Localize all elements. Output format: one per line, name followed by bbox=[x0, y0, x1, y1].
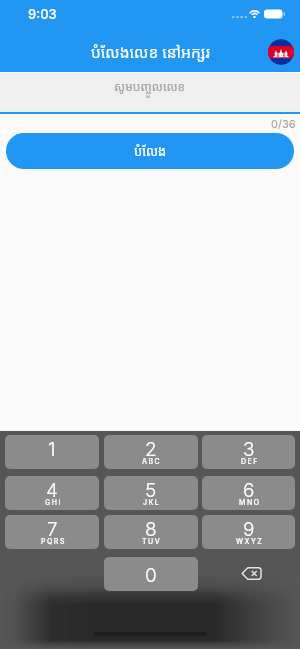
staticText: បំលែងលេខ នៅអក្សរ bbox=[91, 41, 210, 62]
button[interactable]: 2 bbox=[104, 435, 198, 469]
staticText: 1 bbox=[48, 438, 56, 461]
button[interactable]: 4 bbox=[5, 476, 99, 510]
staticText: GHI bbox=[45, 498, 62, 506]
staticText: PQRS bbox=[41, 537, 66, 545]
button[interactable]: 7 bbox=[5, 515, 99, 549]
staticText: 5 bbox=[145, 479, 157, 502]
staticText: ABC bbox=[142, 457, 162, 465]
button[interactable]: Cambodia flag bbox=[268, 39, 294, 65]
button[interactable]: បំលែង bbox=[6, 133, 294, 169]
staticText: 4 bbox=[46, 479, 58, 502]
button[interactable]: Backspace bbox=[202, 557, 295, 591]
staticText: 0 bbox=[145, 564, 157, 587]
button[interactable]: 9 bbox=[202, 515, 295, 549]
staticText: 7 bbox=[47, 518, 58, 541]
staticText: DEF bbox=[241, 457, 259, 465]
staticText: 2 bbox=[145, 438, 157, 461]
staticText: 9 bbox=[243, 518, 255, 541]
button[interactable]: 1 bbox=[5, 435, 99, 469]
staticText: 8 bbox=[145, 518, 157, 541]
staticText: JKL bbox=[143, 498, 161, 506]
staticText: សូមបញ្ចូលលេខ bbox=[114, 78, 186, 94]
staticText: 6 bbox=[243, 479, 255, 502]
button[interactable]: 3 bbox=[202, 435, 295, 469]
staticText: MNO bbox=[239, 498, 261, 506]
button[interactable]: 0 bbox=[104, 557, 198, 591]
button[interactable]: 6 bbox=[202, 476, 295, 510]
staticText: បំលែង bbox=[134, 142, 167, 160]
staticText: WXYZ bbox=[236, 537, 264, 545]
staticText: TUV bbox=[142, 537, 162, 545]
button[interactable]: 5 bbox=[104, 476, 198, 510]
staticText: 0/36 bbox=[271, 117, 296, 130]
button[interactable]: 8 bbox=[104, 515, 198, 549]
staticText: 9:03 bbox=[28, 6, 57, 22]
staticText: 3 bbox=[243, 438, 255, 461]
